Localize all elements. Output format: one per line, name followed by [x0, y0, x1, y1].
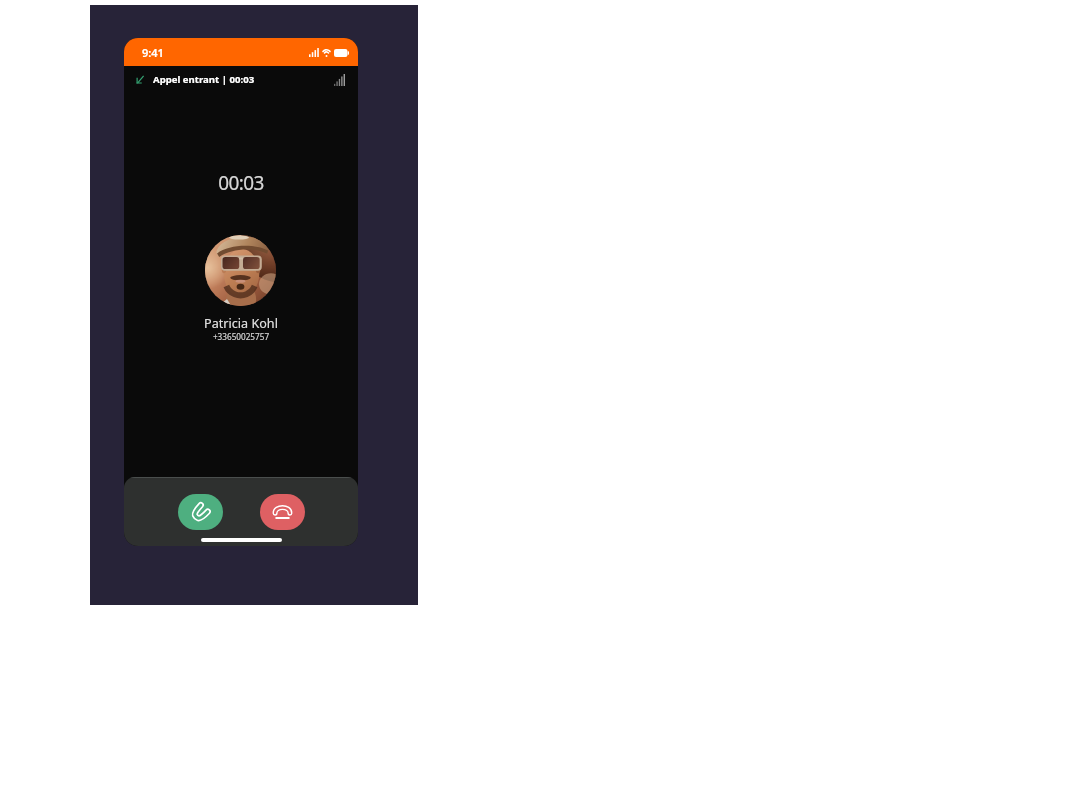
button[interactable]: Decline call: [260, 494, 305, 530]
staticText: 00:03: [124, 170, 358, 196]
button[interactable]: Incoming call: [124, 66, 358, 94]
staticText: Patricia Kohl: [124, 315, 358, 332]
staticText: +33650025757: [124, 331, 358, 342]
staticText: 9:41: [142, 45, 164, 60]
other: Incoming call: [136, 75, 144, 85]
other: Signal strength: [334, 74, 346, 86]
button[interactable]: Answer call: [178, 494, 223, 530]
staticText: Appel entrant | 00:03: [153, 73, 255, 86]
